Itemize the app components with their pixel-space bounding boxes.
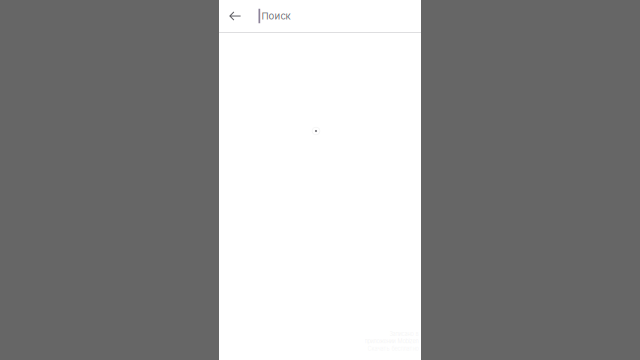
button[interactable]: Back bbox=[223, 0, 247, 32]
button[interactable]: Поиск bbox=[258, 0, 416, 32]
staticText: Поиск bbox=[261, 10, 290, 22]
